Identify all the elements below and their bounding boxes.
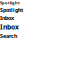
staticText: Inbox: [0, 14, 14, 21]
staticText: Spotlight: [0, 6, 23, 13]
staticText: Inbox: [0, 22, 19, 31]
staticText: Search: [0, 32, 17, 39]
staticText: Spotlight: [0, 0, 20, 5]
